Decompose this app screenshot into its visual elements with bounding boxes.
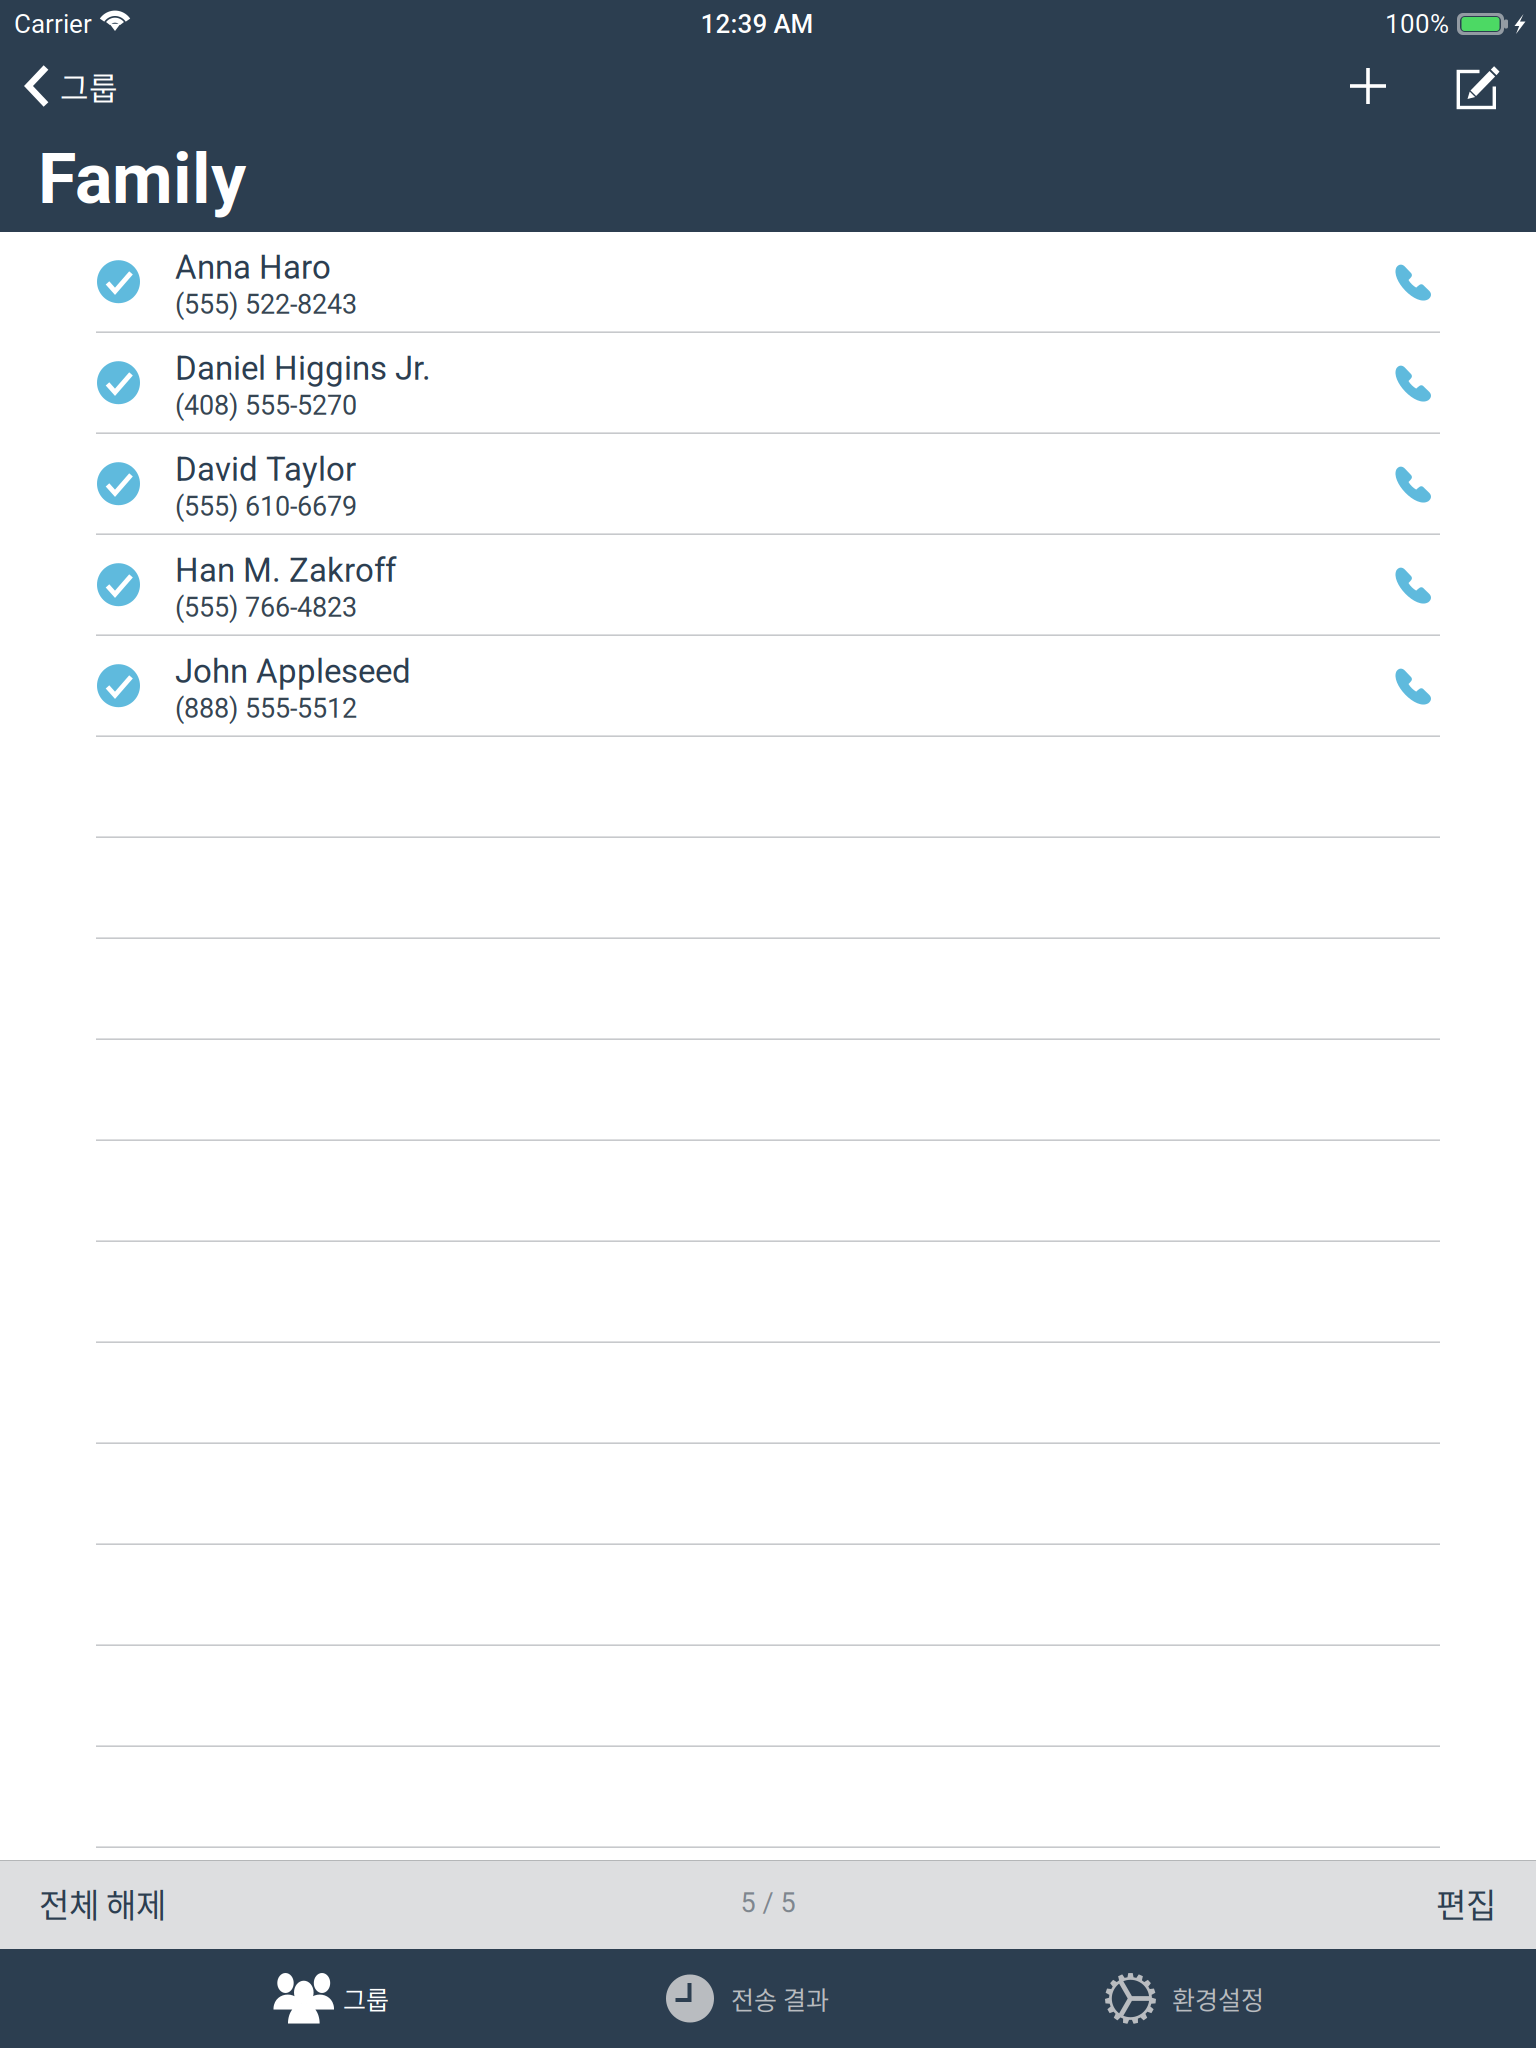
staticText: (555) 610-6679: [175, 491, 357, 522]
staticText: John Appleseed: [175, 652, 411, 691]
staticText: (555) 766-4823: [175, 592, 357, 623]
button[interactable]: John Appleseed: [0, 636, 1536, 737]
staticText: (555) 522-8243: [175, 289, 357, 320]
button[interactable]: Compose message: [1423, 48, 1536, 124]
staticText: (888) 555-5512: [175, 693, 357, 724]
button[interactable]: Han M. Zakroff: [0, 535, 1536, 636]
button[interactable]: Add group: [1313, 48, 1423, 124]
button[interactable]: 그룹: [0, 1949, 666, 2048]
staticText: 전송 결과: [731, 1980, 829, 2017]
staticText: Carrier: [14, 9, 92, 39]
staticText: Family: [38, 138, 246, 220]
button[interactable]: 그룹: [0, 48, 134, 124]
staticText: 그룹: [343, 1980, 389, 2017]
staticText: Han M. Zakroff: [175, 551, 396, 590]
staticText: 12:39 AM: [700, 9, 813, 39]
button[interactable]: Daniel Higgins Jr.: [0, 333, 1536, 434]
button[interactable]: 편집: [1408, 1861, 1536, 1949]
staticText: 5 / 5: [740, 1887, 795, 1919]
button[interactable]: 환경설정: [1105, 1949, 1264, 2048]
staticText: 그룹: [60, 64, 118, 108]
staticText: Daniel Higgins Jr.: [175, 349, 431, 388]
staticText: 편집: [1436, 1879, 1496, 1927]
button[interactable]: 전송 결과: [666, 1949, 1105, 2048]
button[interactable]: 전체 해제: [0, 1861, 194, 1949]
staticText: 전체 해제: [39, 1879, 166, 1927]
staticText: 100%: [1385, 9, 1449, 39]
button[interactable]: Anna Haro: [0, 232, 1536, 333]
staticText: Anna Haro: [175, 248, 331, 287]
button[interactable]: David Taylor: [0, 434, 1536, 535]
staticText: 환경설정: [1172, 1980, 1264, 2017]
staticText: (408) 555-5270: [175, 390, 357, 421]
staticText: David Taylor: [175, 450, 356, 489]
